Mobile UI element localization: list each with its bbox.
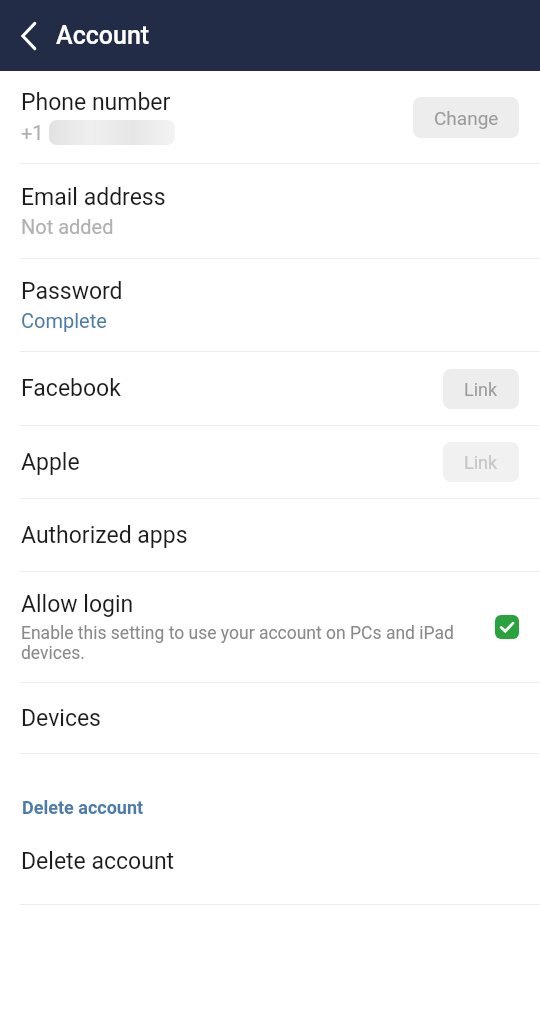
staticText: Facebook xyxy=(21,375,121,402)
button[interactable]: Link xyxy=(443,442,519,482)
staticText: Password xyxy=(21,278,123,305)
staticText: +1 xyxy=(21,121,49,144)
staticText: Change xyxy=(434,107,499,129)
staticText: Link xyxy=(464,379,498,400)
staticText: Allow login xyxy=(21,591,134,618)
staticText: Apple xyxy=(21,449,80,476)
button[interactable]: Devices xyxy=(0,683,540,753)
button[interactable]: Allow login xyxy=(0,572,540,682)
staticText: Not added xyxy=(21,215,114,238)
button[interactable]: Email address xyxy=(0,164,540,258)
staticText: Email address xyxy=(21,184,166,211)
staticText: Account xyxy=(56,21,150,50)
staticText: Link xyxy=(464,452,498,473)
button[interactable]: Apple xyxy=(0,426,540,498)
staticText: Complete xyxy=(21,309,107,332)
staticText: Delete account xyxy=(22,797,144,818)
button[interactable]: Phone number xyxy=(0,71,540,163)
staticText: Devices xyxy=(21,705,101,732)
staticText: Delete account xyxy=(21,848,175,875)
button[interactable]: Authorized apps xyxy=(0,499,540,571)
button[interactable]: Password xyxy=(0,259,540,351)
button[interactable]: Delete account xyxy=(0,818,540,904)
button[interactable]: Change xyxy=(413,97,519,138)
staticText: Enable this setting to use your account … xyxy=(21,623,454,663)
staticText: Phone number xyxy=(21,89,171,116)
button[interactable]: Facebook xyxy=(0,352,540,425)
staticText: Authorized apps xyxy=(21,522,188,549)
button[interactable] xyxy=(8,14,52,58)
button[interactable]: Link xyxy=(443,369,519,409)
button[interactable] xyxy=(495,615,519,639)
